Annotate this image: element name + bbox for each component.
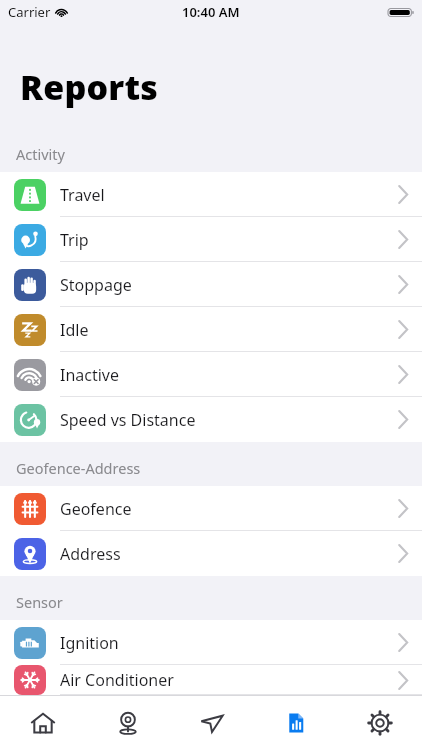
button[interactable]: Trip bbox=[0, 217, 422, 262]
button[interactable]: Idle bbox=[0, 307, 422, 352]
button[interactable]: Speed vs Distance bbox=[0, 397, 422, 442]
button[interactable]: Travel bbox=[0, 172, 422, 217]
staticText: Inactive bbox=[60, 364, 120, 386]
button[interactable]: Navigate bbox=[170, 696, 254, 750]
staticText: Geofence bbox=[60, 498, 132, 520]
button[interactable]: Inactive bbox=[0, 352, 422, 397]
button[interactable]: Address bbox=[0, 531, 422, 576]
staticText: Activity bbox=[16, 144, 65, 164]
staticText: Speed vs Distance bbox=[60, 409, 196, 431]
staticText: Idle bbox=[60, 319, 89, 341]
button[interactable]: Stoppage bbox=[0, 262, 422, 307]
button[interactable]: Air Conditioner bbox=[0, 665, 422, 695]
staticText: 10:40 AM bbox=[182, 3, 240, 21]
staticText: Air Conditioner bbox=[60, 669, 174, 691]
staticText: Geofence-Address bbox=[16, 458, 141, 478]
button[interactable]: Home bbox=[0, 696, 85, 750]
button[interactable]: Reports bbox=[254, 696, 338, 750]
staticText: Address bbox=[60, 543, 121, 565]
button[interactable]: Ignition bbox=[0, 620, 422, 665]
button[interactable]: Places bbox=[85, 696, 170, 750]
button[interactable]: Geofence bbox=[0, 486, 422, 531]
staticText: Stoppage bbox=[60, 274, 132, 296]
staticText: Travel bbox=[60, 184, 105, 206]
staticText: Carrier bbox=[8, 3, 51, 21]
staticText: Sensor bbox=[16, 592, 63, 612]
staticText: Ignition bbox=[60, 632, 119, 654]
button[interactable]: Settings bbox=[338, 696, 422, 750]
staticText: Reports bbox=[20, 64, 159, 110]
staticText: Trip bbox=[60, 229, 89, 251]
